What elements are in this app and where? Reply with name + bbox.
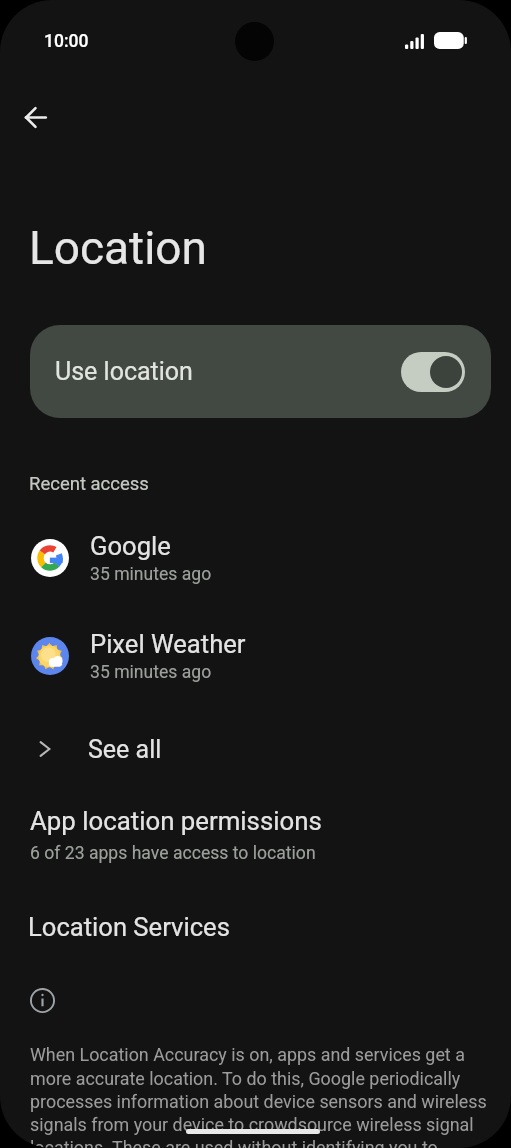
staticText: Pixel Weather [90, 629, 246, 659]
staticText: Recent access [29, 473, 149, 495]
button[interactable]: See all [0, 724, 511, 774]
staticText: When Location Accuracy is on, apps and s… [30, 1044, 493, 1148]
staticText: Location [29, 221, 207, 275]
staticText: 6 of 23 apps have access to location [30, 843, 316, 864]
staticText: See all [88, 735, 162, 764]
button[interactable]: Location Services [0, 901, 511, 953]
button[interactable]: Back [7, 89, 63, 145]
staticText: Use location [55, 357, 401, 386]
button[interactable]: App location permissions [0, 806, 511, 864]
staticText: 35 minutes ago [90, 662, 212, 683]
button[interactable]: Use location [30, 325, 491, 418]
button[interactable]: Google [0, 527, 511, 589]
staticText: Location Services [28, 912, 230, 942]
button[interactable]: Pixel Weather [0, 625, 511, 687]
staticText: App location permissions [30, 806, 322, 836]
staticText: 10:00 [44, 31, 89, 52]
staticText: 35 minutes ago [90, 564, 212, 585]
staticText: Google [90, 531, 171, 561]
